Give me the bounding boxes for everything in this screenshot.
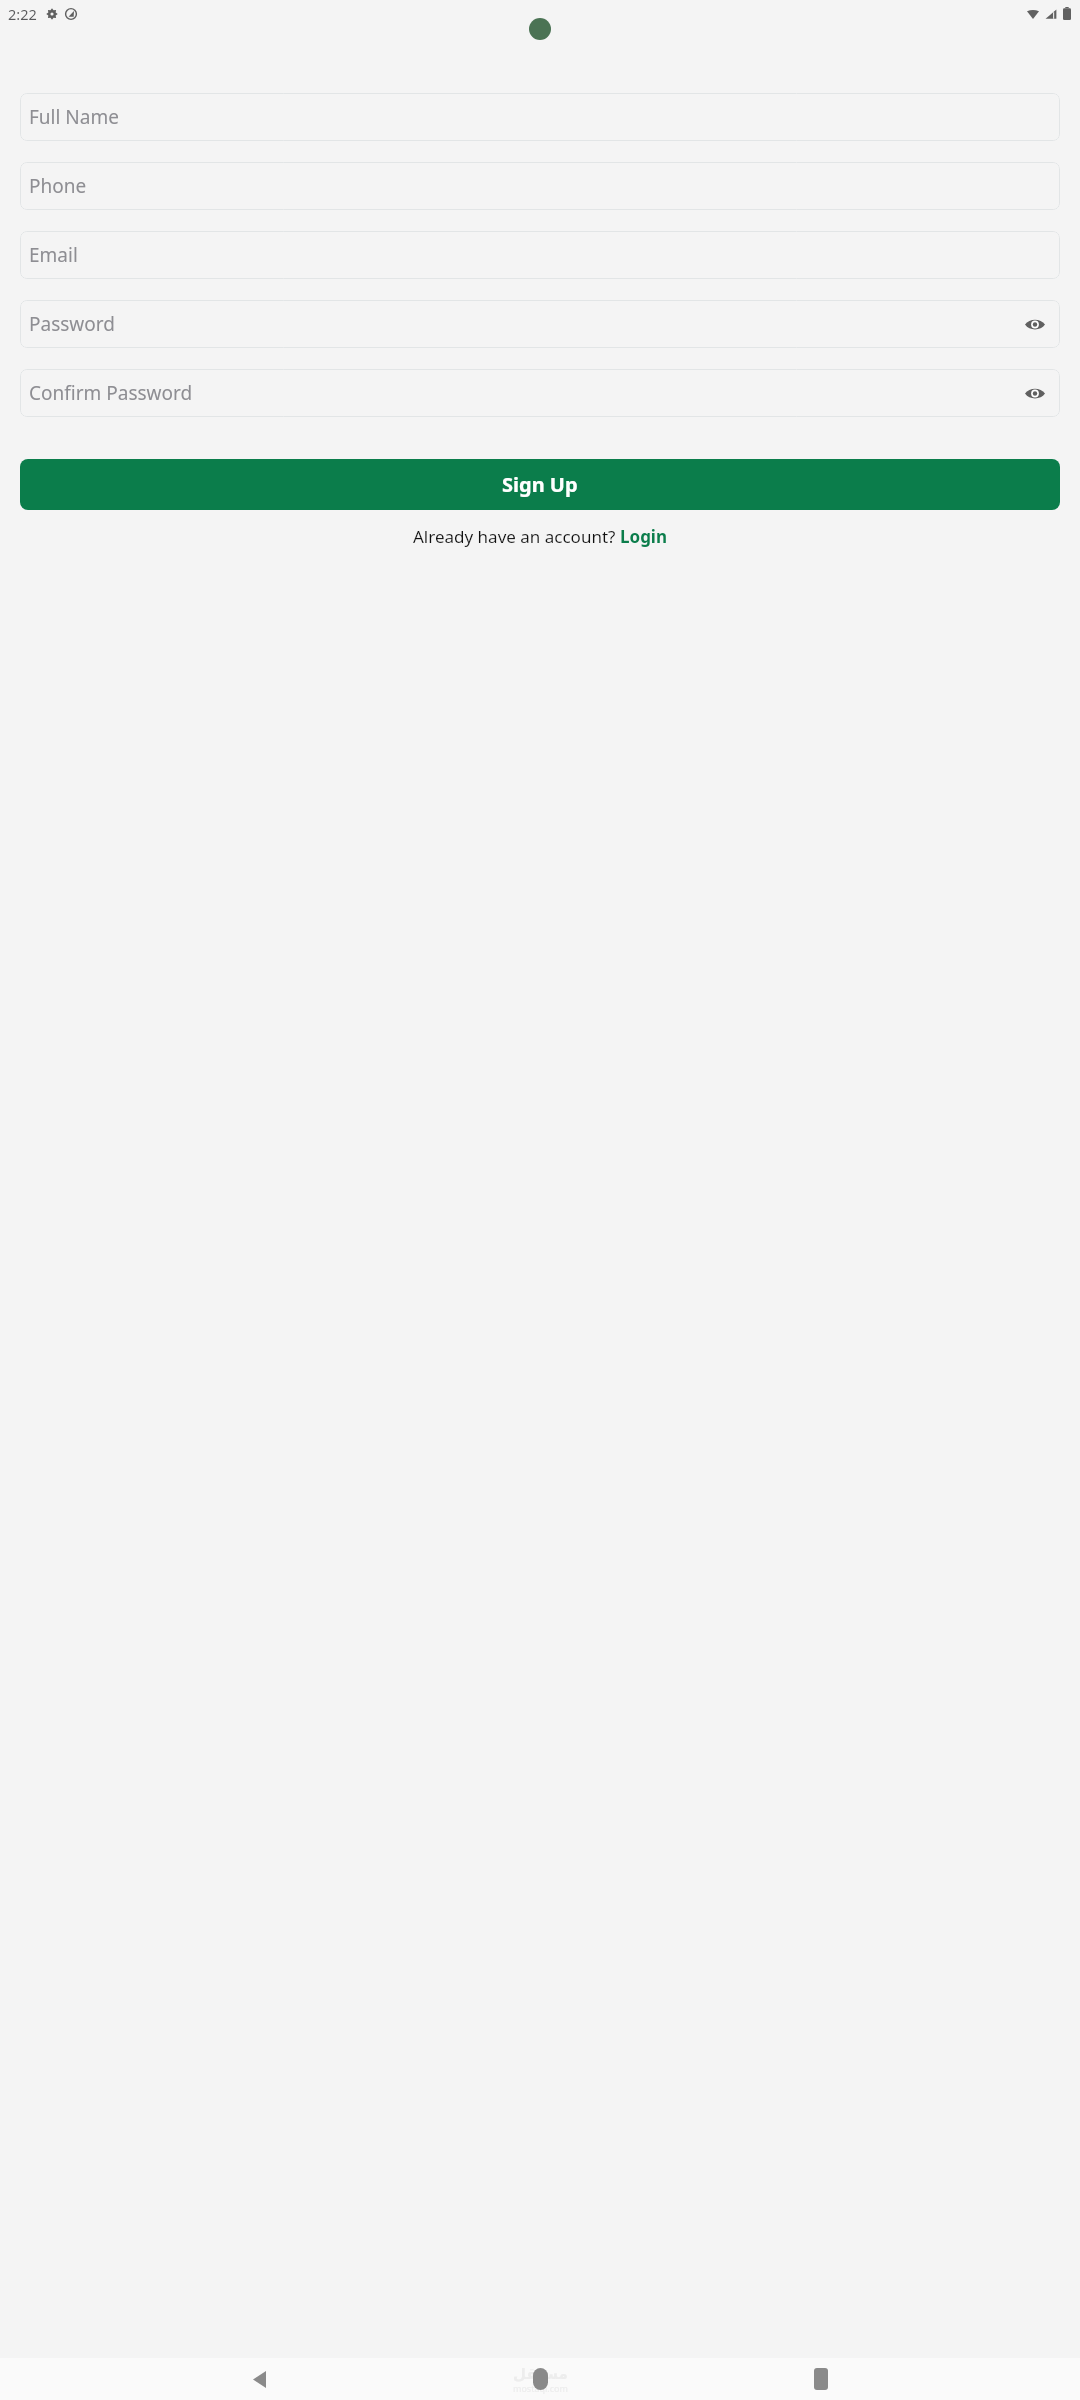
staticText: 2:22 bbox=[8, 4, 37, 24]
button[interactable]: Back bbox=[237, 2358, 281, 2400]
button[interactable]: Confirm Password bbox=[20, 369, 1060, 417]
button[interactable]: Recent apps bbox=[799, 2358, 843, 2400]
button[interactable]: Phone bbox=[20, 162, 1060, 210]
staticText: Login bbox=[620, 525, 668, 548]
button[interactable]: Home bbox=[518, 2358, 562, 2400]
staticText: Password bbox=[29, 311, 115, 337]
button[interactable]: Login bbox=[620, 525, 668, 548]
staticText: mostaql.com bbox=[513, 2382, 568, 2394]
staticText: Full Name bbox=[29, 104, 119, 130]
button[interactable]: Sign Up bbox=[20, 459, 1060, 510]
button[interactable]: Show password bbox=[1022, 311, 1048, 337]
button[interactable]: Email bbox=[20, 231, 1060, 279]
staticText: مستقل bbox=[513, 2365, 568, 2382]
button[interactable]: Password bbox=[20, 300, 1060, 348]
button[interactable]: Full Name bbox=[20, 93, 1060, 141]
staticText: Email bbox=[29, 242, 78, 268]
staticText: Already have an account? bbox=[413, 525, 620, 548]
staticText: Confirm Password bbox=[29, 380, 193, 406]
button[interactable]: Show password bbox=[1022, 380, 1048, 406]
staticText: Phone bbox=[29, 173, 87, 199]
staticText: Sign Up bbox=[502, 471, 578, 498]
